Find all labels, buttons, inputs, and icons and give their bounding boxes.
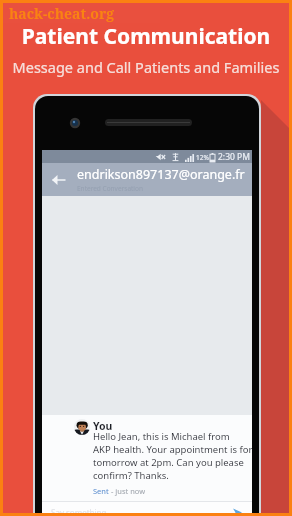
staticText: 12%	[196, 153, 209, 162]
staticText: Hello Jean, this is Michael from AKP hea…	[93, 430, 252, 482]
staticText: Entered Conversation	[77, 184, 143, 193]
staticText: Sent	[93, 486, 109, 496]
staticText: Message and Call Patients and Families	[0, 57, 292, 77]
staticText: hack-cheat.org	[9, 4, 115, 23]
staticText: - just now	[109, 486, 146, 496]
staticText: 2:30 PM	[218, 151, 250, 163]
staticText: Patient Communication	[0, 22, 292, 51]
staticText: You	[93, 419, 113, 433]
button[interactable]: Send	[232, 507, 243, 516]
button[interactable]: Back	[42, 163, 252, 196]
staticText: endrikson897137@orange.fr	[77, 166, 245, 183]
button[interactable]: You	[42, 415, 252, 501]
staticText: Say something...	[51, 507, 113, 516]
button[interactable]: Back	[51, 172, 67, 188]
